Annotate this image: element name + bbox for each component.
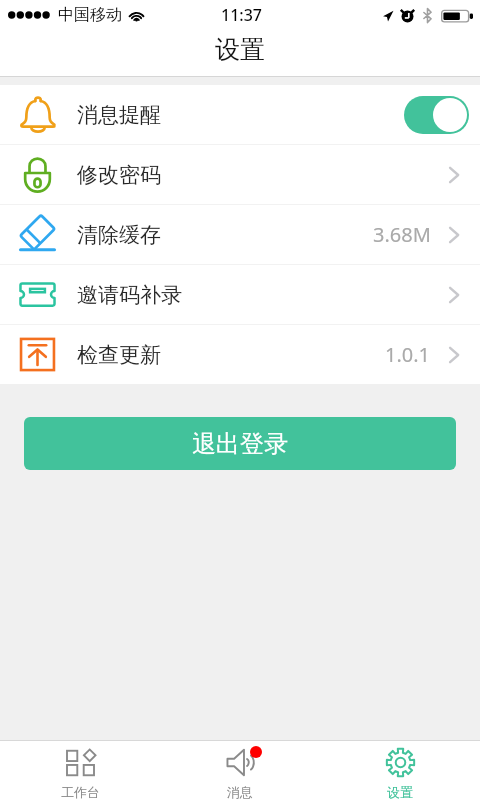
staticText: 中国移动: [58, 5, 122, 25]
staticText: 邀请码补录: [77, 282, 182, 308]
staticText: 3.68M: [373, 221, 431, 248]
staticText: 11:37: [221, 4, 262, 26]
button[interactable]: 消息: [160, 740, 320, 800]
button[interactable]: 修改密码: [0, 145, 480, 204]
staticText: 设置: [215, 34, 265, 65]
staticText: 消息: [227, 784, 253, 800]
staticText: 设置: [387, 784, 413, 800]
staticText: 清除缓存: [77, 222, 161, 248]
button[interactable]: 清除缓存: [0, 205, 480, 264]
staticText: 工作台: [61, 784, 100, 800]
button[interactable]: 消息提醒: [0, 85, 480, 144]
button[interactable]: 设置: [320, 740, 480, 800]
button[interactable]: 邀请码补录: [0, 265, 480, 324]
button[interactable]: 检查更新: [0, 325, 480, 384]
button[interactable]: 退出登录: [24, 417, 456, 470]
staticText: 1.0.1: [385, 341, 431, 368]
staticText: 退出登录: [192, 429, 288, 459]
staticText: 消息提醒: [77, 102, 161, 128]
button[interactable]: 消息提醒开关: [404, 96, 469, 134]
staticText: 修改密码: [77, 162, 161, 188]
staticText: 检查更新: [77, 342, 161, 368]
button[interactable]: 工作台: [0, 740, 160, 800]
